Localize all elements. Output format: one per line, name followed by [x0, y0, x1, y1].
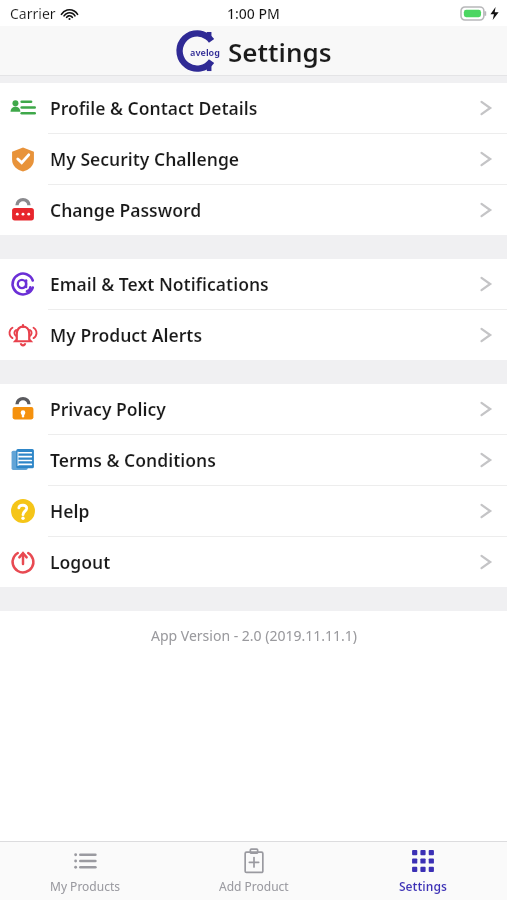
button[interactable]: My Products — [0, 842, 169, 900]
button[interactable]: My Product Alerts — [0, 310, 507, 360]
staticText: Logout — [50, 550, 479, 574]
other: Settings — [410, 848, 436, 874]
button[interactable]: Privacy Policy — [0, 384, 507, 435]
button[interactable]: Email & Text Notifications — [0, 259, 507, 310]
button[interactable]: Terms & Conditions — [0, 435, 507, 486]
staticText: App Version - 2.0 (2019.11.11.1) — [151, 626, 357, 645]
button[interactable]: Help — [0, 486, 507, 537]
staticText: Help — [50, 499, 479, 523]
staticText: Profile & Contact Details — [50, 96, 479, 120]
staticText: Add Product — [219, 878, 289, 894]
staticText: Privacy Policy — [50, 397, 479, 421]
other: My Products — [72, 848, 98, 874]
button[interactable]: Profile & Contact Details — [0, 83, 507, 134]
staticText: 1:00 PM — [227, 4, 280, 23]
staticText: My Security Challenge — [50, 147, 479, 171]
other: Add Product — [241, 848, 267, 874]
staticText: Terms & Conditions — [50, 448, 479, 472]
staticText: My Products — [50, 878, 120, 894]
staticText: Carrier — [10, 4, 56, 23]
staticText: Email & Text Notifications — [50, 272, 479, 296]
button[interactable]: Add Product — [169, 842, 338, 900]
button[interactable]: My Security Challenge — [0, 134, 507, 185]
staticText: Settings — [228, 34, 332, 69]
button[interactable]: Settings — [338, 842, 507, 900]
staticText: My Product Alerts — [50, 323, 479, 347]
staticText: Change Password — [50, 198, 479, 222]
staticText: avelog — [190, 46, 220, 58]
staticText: Settings — [399, 878, 447, 894]
button[interactable]: Change Password — [0, 185, 507, 235]
button[interactable]: Logout — [0, 537, 507, 587]
